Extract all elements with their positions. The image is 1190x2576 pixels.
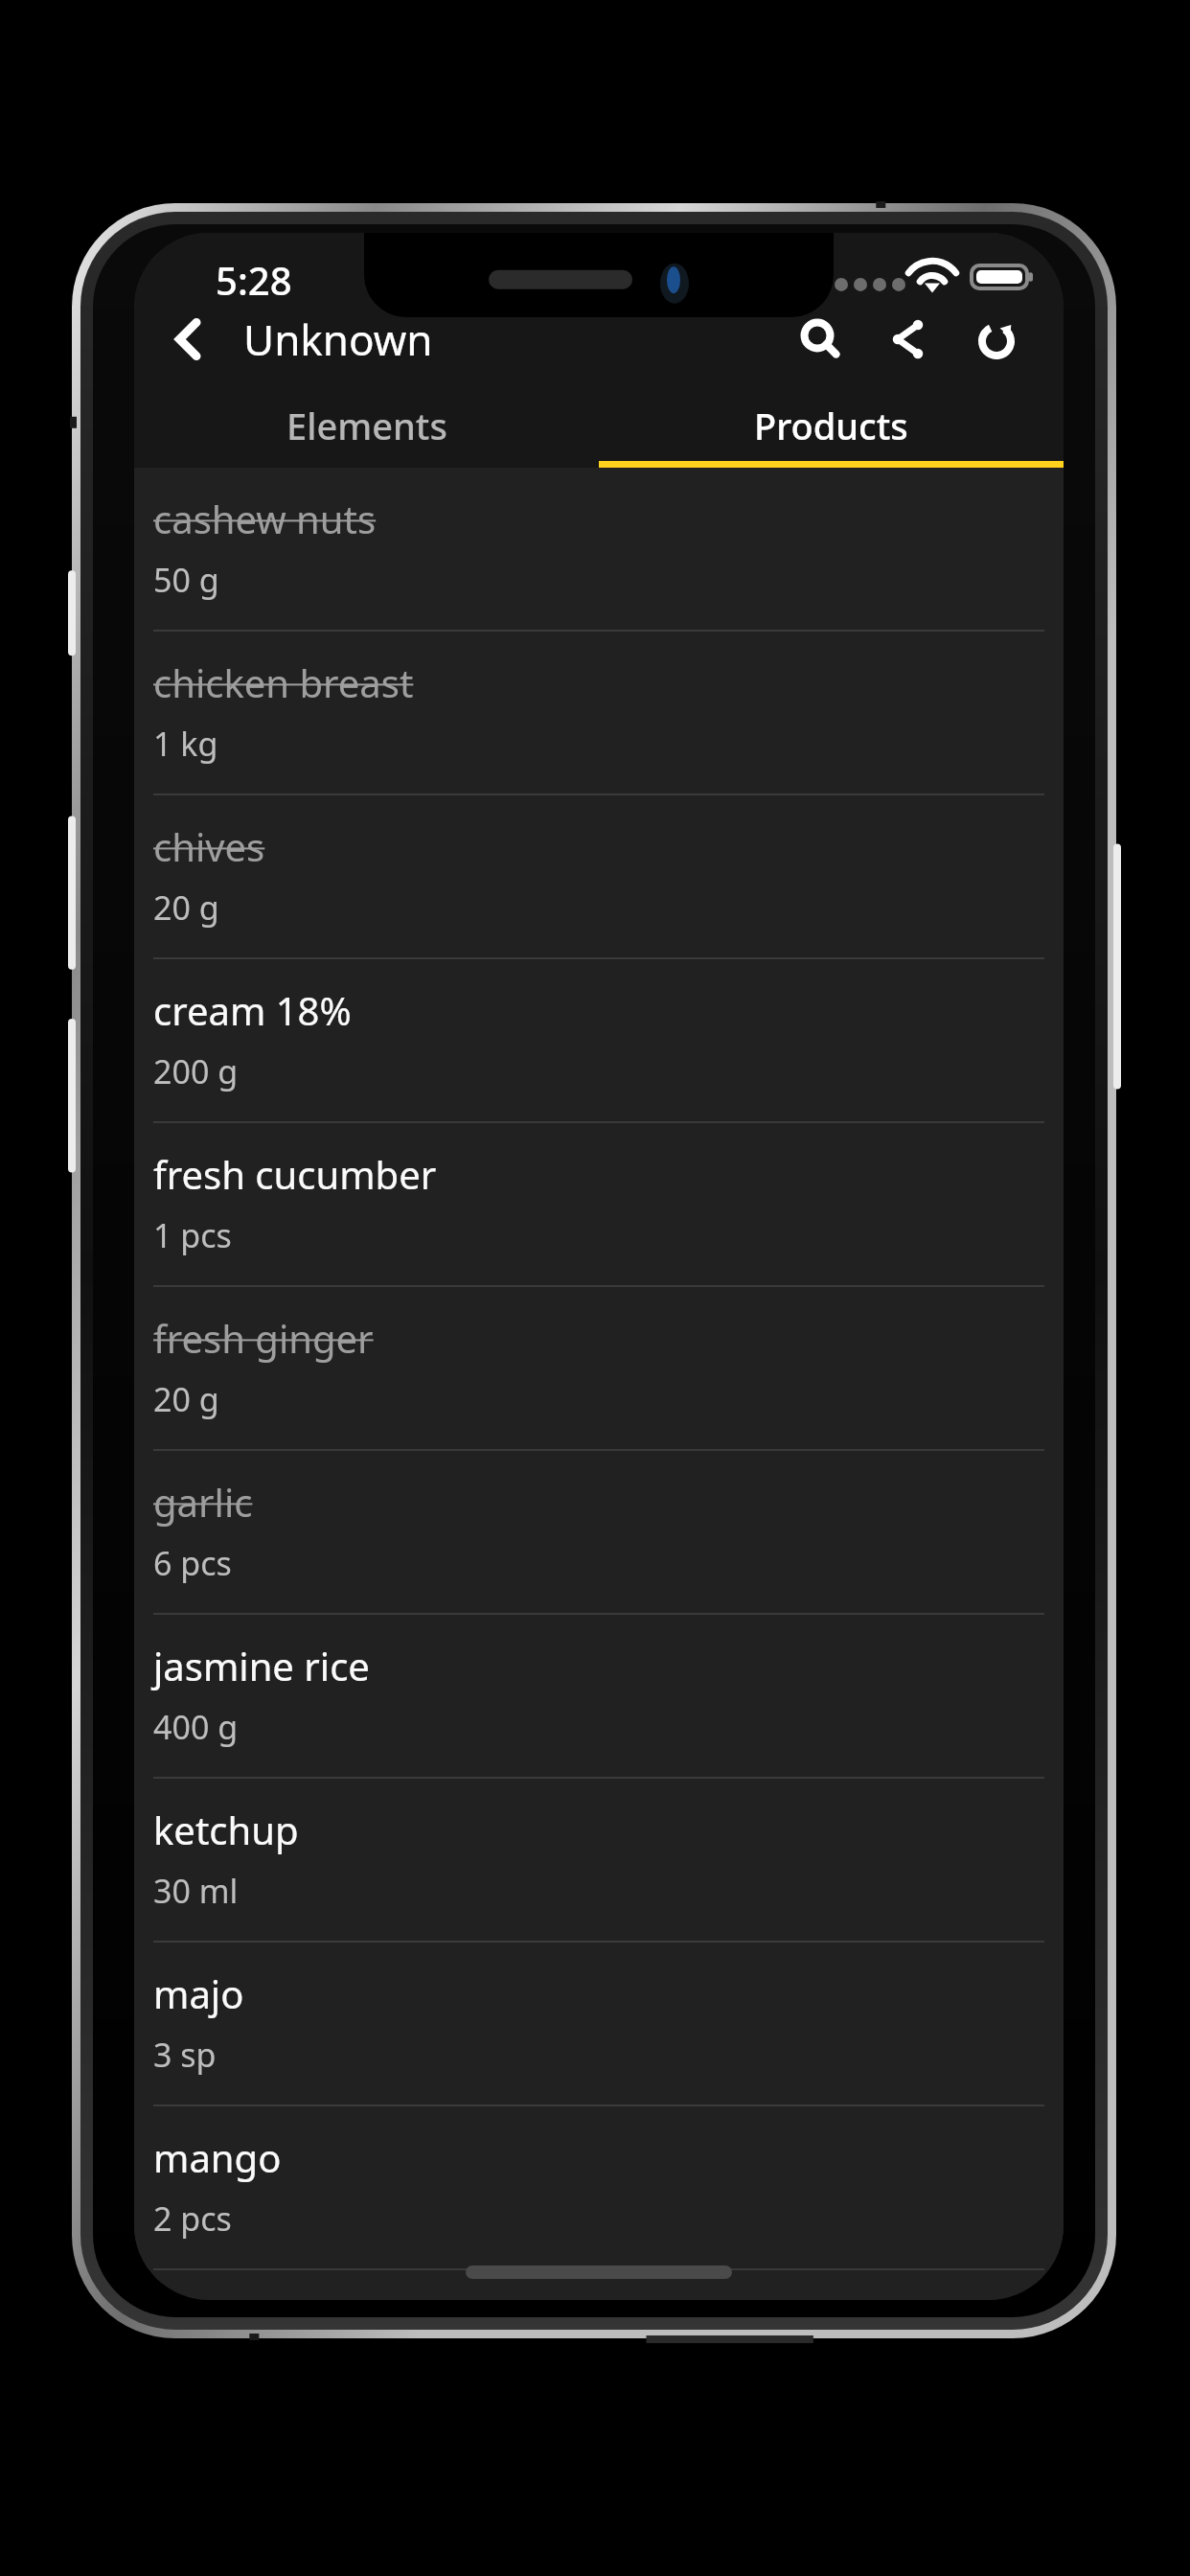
- staticText: fresh cucumber: [153, 1148, 437, 1200]
- staticText: 50 g: [153, 558, 219, 602]
- staticText: ketchup: [153, 1804, 299, 1855]
- staticText: 3 sp: [153, 2033, 217, 2077]
- staticText: jasmine rice: [153, 1640, 370, 1691]
- staticText: mango: [153, 2131, 282, 2183]
- staticText: Unknown: [243, 310, 776, 368]
- button[interactable]: fresh cucumber: [134, 1123, 1064, 1287]
- button[interactable]: cream 18%: [134, 959, 1064, 1123]
- button[interactable]: cashew nuts: [134, 468, 1064, 632]
- button[interactable]: Search: [776, 295, 864, 383]
- button[interactable]: fresh ginger: [134, 1287, 1064, 1451]
- staticText: 20 g: [153, 885, 219, 930]
- button[interactable]: mango: [134, 2106, 1064, 2270]
- staticText: 1 kg: [153, 722, 218, 766]
- staticText: 2 pcs: [153, 2196, 232, 2241]
- button[interactable]: chives: [134, 795, 1064, 959]
- button[interactable]: jasmine rice: [134, 1615, 1064, 1779]
- staticText: 30 ml: [153, 1869, 239, 1913]
- staticText: 400 g: [153, 1705, 239, 1749]
- button[interactable]: Elements: [134, 383, 599, 468]
- button[interactable]: chicken breast: [134, 632, 1064, 795]
- staticText: 1 pcs: [153, 1213, 232, 1257]
- button[interactable]: Share: [864, 295, 952, 383]
- staticText: chicken breast: [153, 656, 414, 708]
- staticText: cashew nuts: [153, 493, 377, 544]
- staticText: chives: [153, 820, 265, 872]
- staticText: fresh ginger: [153, 1312, 374, 1364]
- button[interactable]: Refresh: [952, 295, 1041, 383]
- staticText: 5:28: [216, 254, 292, 306]
- staticText: cream 18%: [153, 984, 352, 1036]
- button[interactable]: garlic: [134, 1451, 1064, 1615]
- button[interactable]: Back: [149, 299, 230, 379]
- staticText: 200 g: [153, 1049, 239, 1093]
- button[interactable]: majo: [134, 1943, 1064, 2106]
- button[interactable]: Products: [599, 383, 1064, 468]
- staticText: garlic: [153, 1476, 253, 1528]
- staticText: Products: [754, 401, 908, 450]
- staticText: 20 g: [153, 1377, 219, 1421]
- button[interactable]: ketchup: [134, 1779, 1064, 1943]
- staticText: Elements: [286, 401, 447, 450]
- staticText: majo: [153, 1967, 244, 2019]
- staticText: 6 pcs: [153, 1541, 232, 1585]
